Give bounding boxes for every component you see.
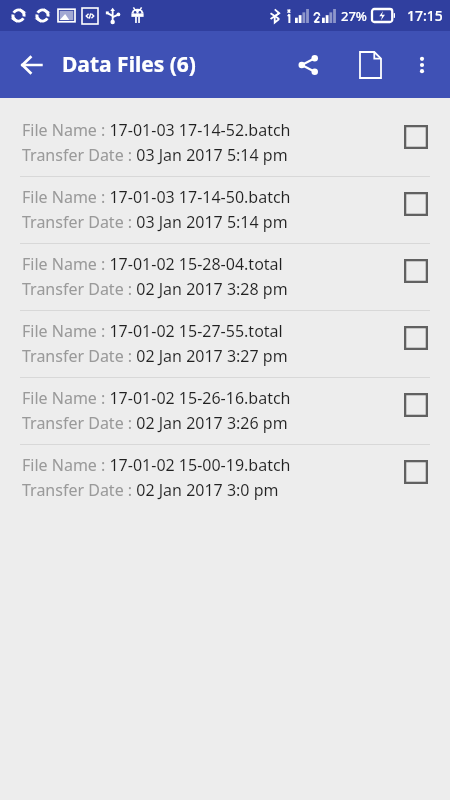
button[interactable]: Select file [402, 391, 430, 419]
button[interactable]: More options [398, 41, 446, 89]
button[interactable]: File Name : 17-01-02 15-00-19.batch [0, 445, 450, 511]
staticText: Transfer Date : 03 Jan 2017 5:14 pm [22, 211, 288, 233]
button[interactable]: Select file [402, 190, 430, 218]
button[interactable]: Select file [402, 324, 430, 352]
staticText: Transfer Date : 02 Jan 2017 3:28 pm [22, 278, 288, 300]
staticText: 17:15 [407, 6, 443, 25]
button[interactable]: File Name : 17-01-03 17-14-50.batch [0, 177, 450, 243]
button[interactable]: Select file [402, 257, 430, 285]
button[interactable]: File Name : 17-01-02 15-27-55.total [0, 311, 450, 377]
button[interactable]: File Name : 17-01-02 15-26-16.batch [0, 378, 450, 444]
staticText: File Name : 17-01-02 15-26-16.batch [22, 387, 291, 409]
button[interactable]: Back [8, 41, 56, 89]
button[interactable]: Export as PDF [346, 41, 394, 89]
staticText: File Name : 17-01-02 15-00-19.batch [22, 454, 291, 476]
staticText: Transfer Date : 02 Jan 2017 3:0 pm [22, 479, 279, 501]
button[interactable]: Select file [402, 123, 430, 151]
staticText: File Name : 17-01-02 15-27-55.total [22, 320, 283, 342]
button[interactable]: File Name : 17-01-03 17-14-52.batch [0, 110, 450, 176]
staticText: File Name : 17-01-03 17-14-50.batch [22, 186, 291, 208]
staticText: Transfer Date : 02 Jan 2017 3:26 pm [22, 412, 288, 434]
staticText: 27% [341, 7, 367, 25]
staticText: Transfer Date : 03 Jan 2017 5:14 pm [22, 144, 288, 166]
staticText: File Name : 17-01-02 15-28-04.total [22, 253, 283, 275]
staticText: Data Files (6) [62, 50, 196, 79]
button[interactable]: File Name : 17-01-02 15-28-04.total [0, 244, 450, 310]
staticText: Transfer Date : 02 Jan 2017 3:27 pm [22, 345, 288, 367]
staticText: File Name : 17-01-03 17-14-52.batch [22, 119, 291, 141]
button[interactable]: Share [284, 41, 332, 89]
button[interactable]: Select file [402, 458, 430, 486]
